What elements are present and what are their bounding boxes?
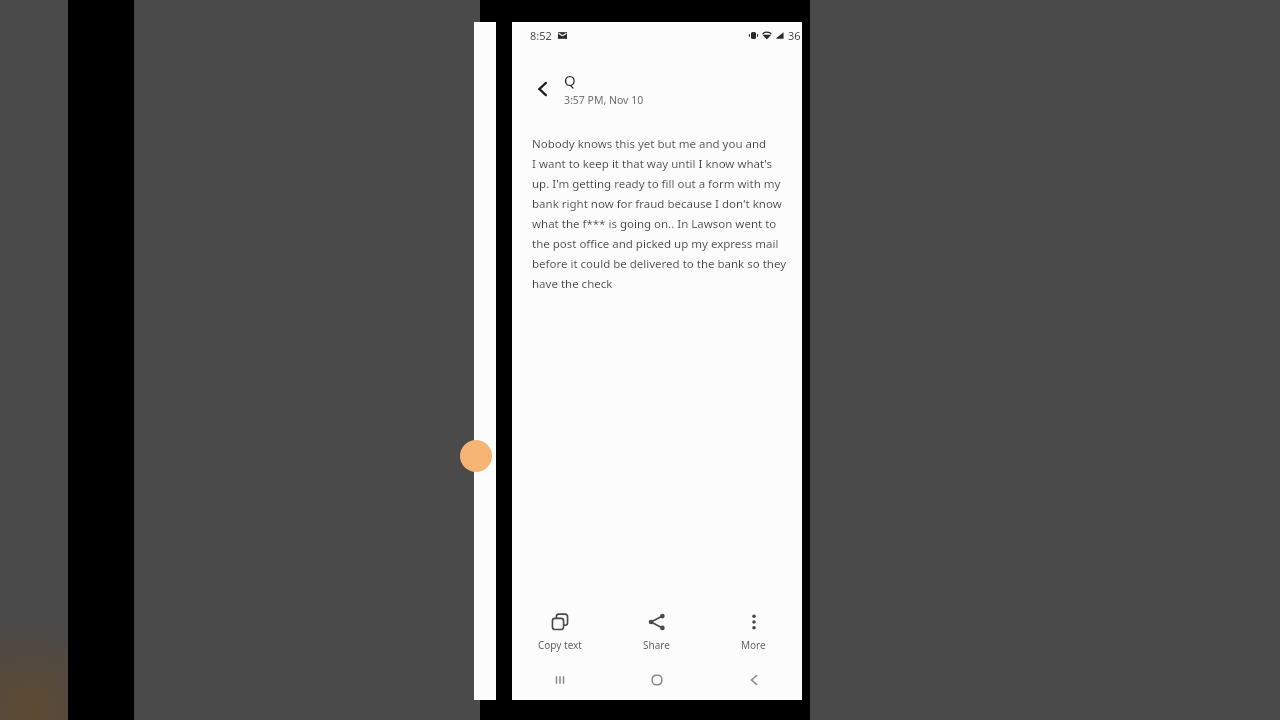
staticText: up. I'm getting ready to fill out a form… <box>532 176 781 192</box>
staticText: Nobody knows this yet but me and you and <box>532 136 767 152</box>
staticText: bank right now for fraud because I don't… <box>532 196 782 212</box>
staticText: Copy text <box>538 638 582 652</box>
staticText: Q <box>564 70 576 90</box>
button[interactable]: Share <box>608 604 705 660</box>
button[interactable]: More <box>705 604 802 660</box>
button[interactable]: Back <box>526 72 560 106</box>
staticText: the post office and picked up my express… <box>532 236 779 252</box>
staticText: 3:57 PM, Nov 10 <box>564 93 644 107</box>
staticText: Share <box>643 638 670 652</box>
button[interactable]: Home <box>608 660 705 700</box>
staticText: have the check <box>532 276 613 292</box>
button[interactable]: Back <box>705 660 802 700</box>
staticText: what the f*** is going on.. In Lawson we… <box>532 216 777 232</box>
staticText: I want to keep it that way until I know … <box>532 156 773 172</box>
button[interactable]: Copy text <box>512 604 608 660</box>
staticText: More <box>741 638 766 652</box>
staticText: 8:52 <box>530 28 552 43</box>
button[interactable]: Recent apps <box>512 660 608 700</box>
staticText: 36 <box>788 28 801 43</box>
staticText: before it could be delivered to the bank… <box>532 256 787 272</box>
